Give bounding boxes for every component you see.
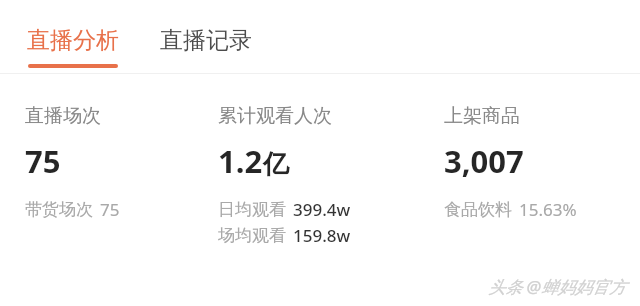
staticText: 159.8w bbox=[293, 224, 351, 247]
staticText: 带货场次 bbox=[25, 199, 93, 220]
staticText: 75 bbox=[100, 198, 120, 221]
staticText: 15.63% bbox=[519, 198, 577, 221]
staticText: 75 bbox=[25, 140, 61, 182]
button[interactable]: 直播分析 bbox=[27, 26, 119, 68]
staticText: 直播记录 bbox=[160, 26, 252, 55]
staticText: 上架商品 bbox=[444, 104, 520, 128]
staticText: 399.4w bbox=[293, 198, 351, 221]
staticText: 3,007 bbox=[444, 140, 524, 182]
staticText: 场均观看 bbox=[218, 225, 286, 246]
staticText: 食品饮料 bbox=[444, 199, 512, 220]
staticText: 直播场次 bbox=[25, 104, 101, 128]
staticText: 累计观看人次 bbox=[218, 104, 332, 128]
staticText: 直播分析 bbox=[27, 26, 119, 55]
staticText: 头条 @蝉妈妈官方 bbox=[488, 275, 626, 298]
staticText: 日均观看 bbox=[218, 199, 286, 220]
staticText: 1.2 bbox=[218, 140, 263, 182]
staticText: 亿 bbox=[263, 148, 289, 181]
button[interactable]: 直播记录 bbox=[160, 26, 252, 68]
